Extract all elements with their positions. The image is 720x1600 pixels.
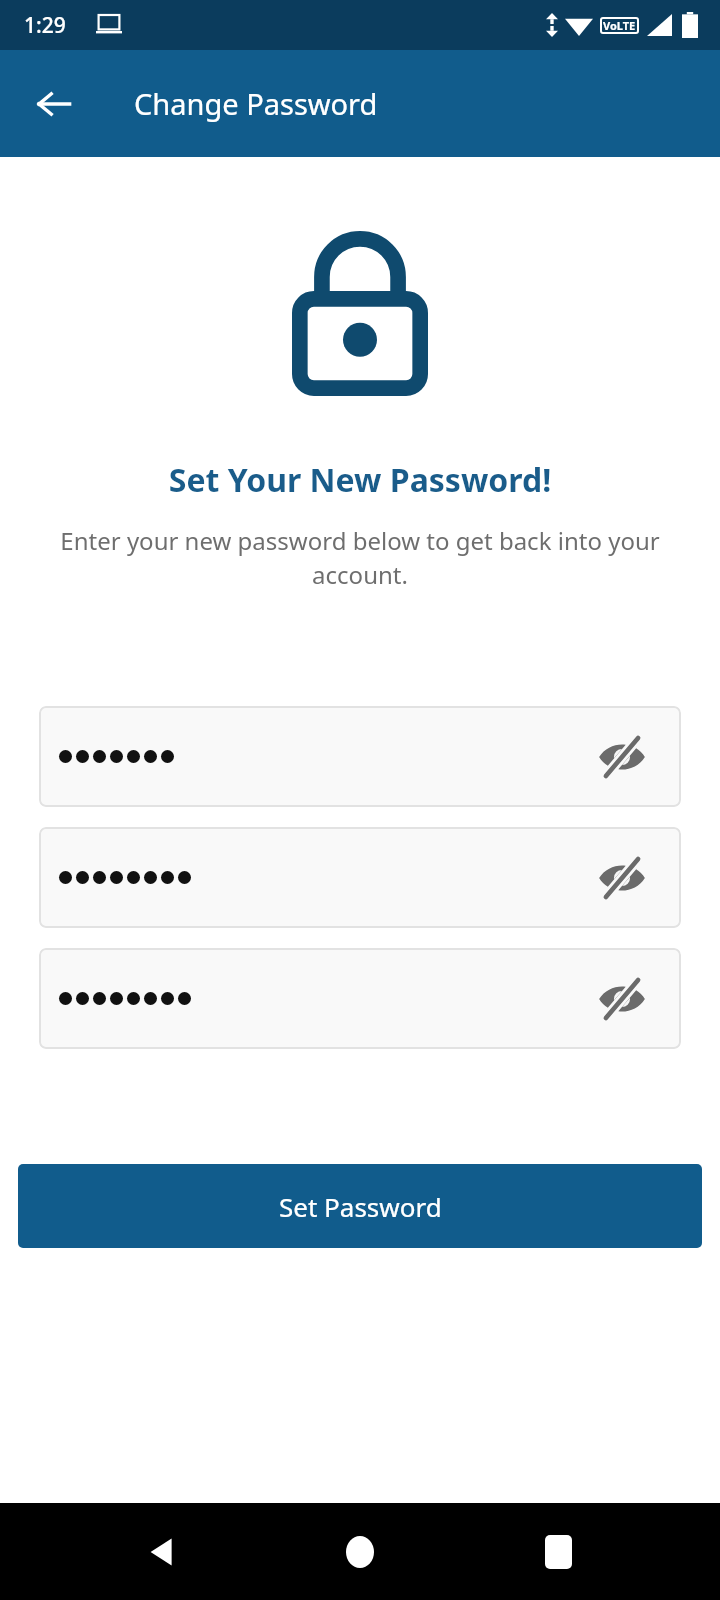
button[interactable]: Set Password bbox=[18, 1164, 702, 1248]
button[interactable]: Show password bbox=[39, 827, 681, 928]
staticText: Set Your New Password! bbox=[0, 458, 720, 502]
button[interactable]: Show password bbox=[591, 847, 653, 909]
button[interactable]: Back bbox=[26, 76, 82, 132]
staticText: VoLTE bbox=[603, 18, 636, 33]
button[interactable]: Recent apps bbox=[522, 1516, 594, 1588]
staticText: Set Password bbox=[279, 1189, 442, 1224]
button[interactable]: Show password bbox=[39, 706, 681, 807]
staticText: Enter your new password below to get bac… bbox=[34, 524, 686, 591]
button[interactable]: Show password bbox=[591, 968, 653, 1030]
button[interactable]: Home bbox=[324, 1516, 396, 1588]
staticText: 1:29 bbox=[24, 11, 66, 40]
button[interactable]: Show password bbox=[591, 726, 653, 788]
staticText: Change Password bbox=[134, 84, 378, 123]
button[interactable]: Back bbox=[126, 1516, 198, 1588]
button[interactable]: Show password bbox=[39, 948, 681, 1049]
